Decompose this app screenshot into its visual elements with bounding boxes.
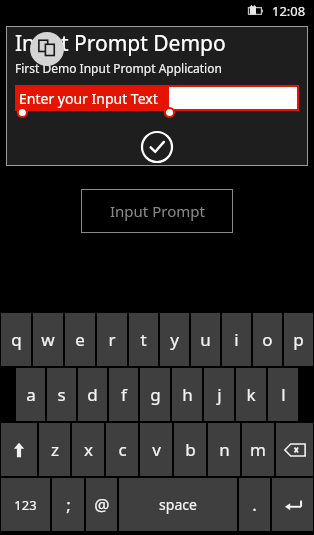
button[interactable]: s	[47, 368, 76, 421]
staticText: n	[219, 438, 230, 461]
button[interactable]: m	[242, 423, 274, 476]
button[interactable]: Copy	[30, 32, 64, 66]
button[interactable]: Enter your Input Text	[15, 85, 299, 111]
button[interactable]: c	[106, 423, 138, 476]
button[interactable]: h	[172, 368, 202, 421]
staticText: m	[250, 438, 266, 461]
staticText: .	[252, 493, 257, 516]
staticText: a	[26, 383, 36, 406]
button[interactable]: l	[268, 368, 298, 421]
staticText: p	[293, 328, 304, 351]
staticText: w	[41, 328, 55, 351]
staticText: Input Prompt	[110, 201, 205, 221]
button[interactable]: space	[119, 478, 237, 531]
button[interactable]: z	[39, 423, 70, 476]
staticText: First Demo Input Prompt Application	[15, 60, 222, 76]
button[interactable]: n	[208, 423, 240, 476]
staticText: h	[182, 383, 193, 406]
staticText: e	[75, 328, 85, 351]
button[interactable]: a	[16, 368, 45, 421]
button[interactable]: b	[174, 423, 206, 476]
button[interactable]: d	[78, 368, 107, 421]
staticText: l	[281, 383, 286, 406]
staticText: x	[84, 438, 93, 461]
button[interactable]: Enter	[272, 478, 313, 531]
button[interactable]: @	[86, 478, 117, 531]
button[interactable]: y	[160, 313, 189, 366]
button[interactable]: .	[239, 478, 270, 531]
staticText: f	[121, 383, 127, 406]
button[interactable]: u	[191, 313, 220, 366]
staticText: ;	[66, 493, 71, 516]
button[interactable]: Backspace	[276, 423, 313, 476]
button[interactable]: Shift	[1, 423, 37, 476]
button[interactable]: j	[204, 368, 234, 421]
staticText: c	[118, 438, 127, 461]
staticText: Input Prompt Dempo	[15, 29, 226, 58]
button[interactable]: g	[140, 368, 170, 421]
staticText: y	[170, 328, 179, 351]
button[interactable]: Input Prompt	[81, 189, 233, 233]
staticText: u	[200, 328, 211, 351]
button[interactable]: x	[72, 423, 104, 476]
button[interactable]: k	[236, 368, 266, 421]
staticText: g	[150, 383, 161, 406]
staticText: k	[246, 383, 256, 406]
staticText: i	[234, 328, 239, 351]
staticText: d	[87, 383, 98, 406]
staticText: s	[57, 383, 66, 406]
button[interactable]: o	[253, 313, 282, 366]
staticText: b	[185, 438, 196, 461]
staticText: o	[262, 328, 273, 351]
staticText: j	[217, 383, 222, 406]
button[interactable]: f	[109, 368, 138, 421]
button[interactable]: i	[222, 313, 251, 366]
staticText: t	[140, 328, 147, 351]
button[interactable]: 123	[1, 478, 50, 531]
staticText: 12:08	[272, 2, 306, 20]
button[interactable]: e	[65, 313, 95, 366]
button[interactable]: p	[284, 313, 313, 366]
button[interactable]: ;	[52, 478, 84, 531]
button[interactable]: Confirm	[139, 129, 175, 165]
staticText: r	[108, 328, 116, 351]
button[interactable]: q	[1, 313, 31, 366]
button[interactable]: t	[129, 313, 158, 366]
staticText: space	[159, 495, 197, 514]
button[interactable]: v	[140, 423, 172, 476]
staticText: q	[11, 328, 22, 351]
staticText: 123	[14, 496, 37, 514]
staticText: Enter your Input Text	[19, 89, 158, 108]
button[interactable]: w	[33, 313, 63, 366]
staticText: z	[51, 438, 59, 461]
staticText: @	[94, 493, 110, 516]
staticText: v	[152, 438, 161, 461]
button[interactable]: r	[97, 313, 127, 366]
